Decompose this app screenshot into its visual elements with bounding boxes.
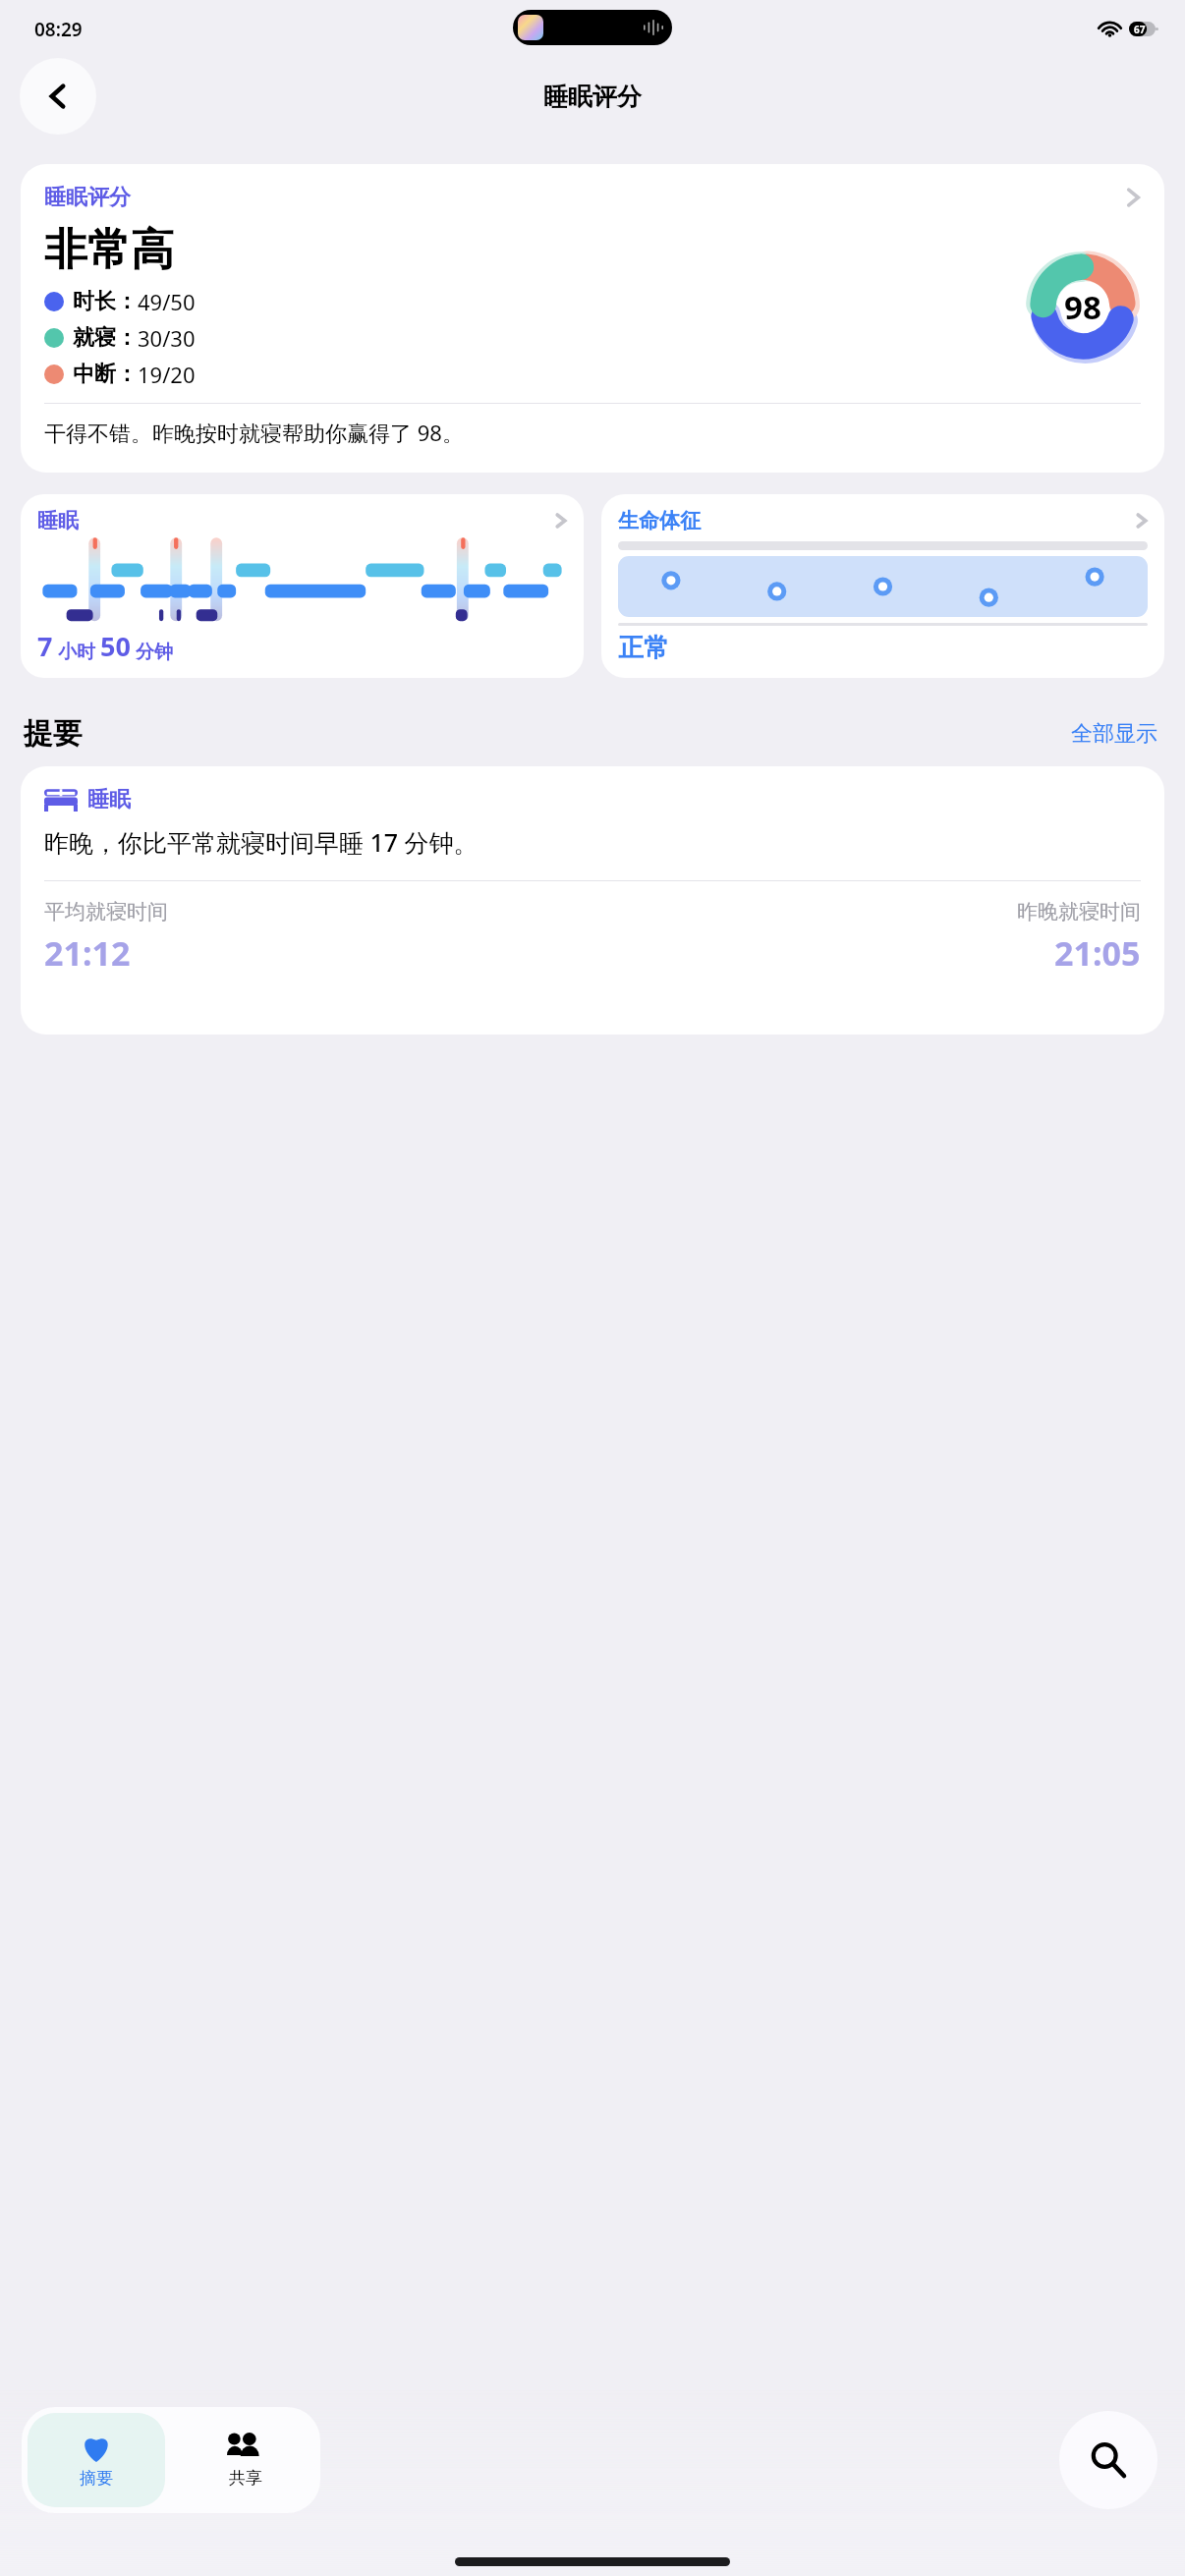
staticText: 小时: [53, 639, 100, 664]
staticText: 摘要: [80, 2468, 113, 2489]
staticText: 睡眠评分: [44, 184, 131, 211]
staticText: 21:12: [44, 930, 131, 976]
staticText: 平均就寝时间: [44, 899, 168, 924]
button[interactable]: 生命体征: [601, 494, 1164, 678]
staticText: 全部显示: [1071, 720, 1157, 748]
staticText: 分钟: [131, 639, 173, 664]
staticText: 提要: [24, 715, 83, 753]
staticText: 08:29: [34, 17, 83, 42]
button[interactable]: 睡眠: [21, 766, 1164, 1035]
staticText: 中断：: [73, 361, 138, 388]
staticText: 50: [100, 628, 131, 664]
staticText: 干得不错。昨晚按时就寝帮助你赢得了 98。: [44, 418, 464, 447]
staticText: 睡眠评分: [543, 82, 642, 112]
staticText: 98: [1064, 285, 1101, 329]
button[interactable]: 全部显示: [1067, 716, 1161, 752]
staticText: 67: [1134, 23, 1146, 36]
staticText: 正常: [618, 632, 669, 664]
staticText: 非常高: [44, 223, 174, 277]
staticText: 时长：: [73, 288, 138, 315]
button[interactable]: Search: [1059, 2411, 1157, 2509]
staticText: 7: [37, 628, 53, 664]
button[interactable]: 摘要: [28, 2413, 165, 2507]
button[interactable]: Back: [20, 58, 96, 135]
staticText: 昨晚，你比平常就寝时间早睡 17 分钟。: [44, 825, 479, 859]
staticText: 30/30: [138, 323, 196, 353]
button[interactable]: 睡眠评分: [21, 164, 1164, 473]
staticText: 睡眠: [37, 508, 79, 533]
staticText: 就寝：: [73, 324, 138, 352]
staticText: 49/50: [138, 287, 196, 316]
button[interactable]: 共享: [177, 2413, 314, 2507]
staticText: 昨晚就寝时间: [1017, 899, 1141, 924]
staticText: 生命体征: [618, 508, 701, 533]
staticText: 19/20: [138, 360, 196, 389]
button[interactable]: 睡眠: [21, 494, 584, 678]
staticText: 21:05: [1054, 930, 1141, 976]
staticText: 睡眠: [87, 786, 131, 813]
staticText: 共享: [229, 2468, 262, 2489]
